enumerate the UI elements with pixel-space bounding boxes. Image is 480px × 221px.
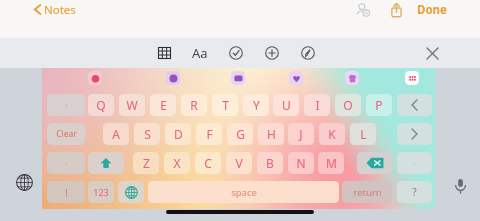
staticText: B (266, 155, 274, 171)
staticText: X (173, 155, 181, 171)
staticText: Z (143, 155, 150, 171)
button[interactable]: C (195, 152, 221, 174)
button[interactable]: B (257, 152, 283, 174)
button[interactable]: U (273, 94, 299, 116)
button[interactable] (118, 181, 144, 203)
staticText: Clear (56, 128, 77, 140)
staticText: return (353, 186, 382, 199)
staticText: ? (412, 185, 417, 199)
staticText: ! (65, 185, 68, 200)
button[interactable]: M (318, 152, 344, 174)
button[interactable]: Y (243, 94, 269, 116)
staticText: F (206, 126, 213, 142)
button[interactable]: Previous (397, 94, 432, 116)
button[interactable]: Notes (34, 2, 76, 17)
button[interactable]: Next (397, 123, 432, 145)
button[interactable]: · (47, 152, 85, 174)
other: Shift (100, 157, 112, 169)
staticText: Done (417, 2, 447, 17)
button[interactable]: Z (133, 152, 159, 174)
button[interactable]: X (164, 152, 190, 174)
button[interactable]: K (319, 123, 345, 145)
staticText: Notes (44, 2, 76, 17)
other: Previous (411, 99, 418, 111)
button[interactable]: · (47, 94, 85, 116)
button[interactable]: G (227, 123, 253, 145)
staticText: J (299, 126, 303, 142)
button[interactable]: A (103, 123, 129, 145)
button[interactable]: Backspace (357, 152, 392, 174)
button[interactable]: Add people (354, 2, 372, 17)
staticText: A (112, 126, 120, 142)
button[interactable]: space (148, 181, 339, 203)
button[interactable]: S (134, 123, 160, 145)
staticText: H (267, 126, 276, 142)
button[interactable]: Attach (260, 41, 284, 65)
staticText: D (174, 126, 183, 142)
staticText: K (328, 126, 336, 142)
staticText: L (360, 126, 367, 142)
button[interactable]: Sticker (166, 71, 180, 85)
button[interactable]: Sticker (88, 71, 102, 85)
other: Backspace (366, 157, 384, 169)
staticText: G (236, 126, 245, 142)
staticText: E (160, 97, 167, 113)
button[interactable]: Text format (188, 41, 212, 65)
button[interactable]: Sticker (405, 71, 419, 85)
button[interactable]: W (119, 94, 145, 116)
staticText: · (413, 157, 416, 169)
staticText: V (235, 155, 243, 171)
button[interactable]: D (165, 123, 191, 145)
button[interactable]: Clear (47, 123, 85, 145)
button[interactable]: Table (152, 41, 176, 65)
staticText: N (296, 155, 306, 171)
button[interactable]: E (150, 94, 176, 116)
staticText: S (144, 126, 151, 142)
button[interactable]: ! (47, 181, 85, 203)
button[interactable]: Shift (88, 152, 124, 174)
other: Next (411, 128, 418, 140)
button[interactable]: H (258, 123, 284, 145)
button[interactable]: I (304, 94, 330, 116)
staticText: R (190, 97, 198, 113)
button[interactable]: Dictation (450, 176, 470, 196)
button[interactable]: L (350, 123, 376, 145)
staticText: · (65, 99, 68, 111)
button[interactable]: N (288, 152, 314, 174)
button[interactable]: P (366, 94, 392, 116)
staticText: space (231, 186, 257, 199)
staticText: Y (253, 97, 260, 113)
button[interactable]: V (226, 152, 252, 174)
button[interactable]: F (196, 123, 222, 145)
staticText: T (222, 97, 229, 113)
button[interactable]: O (335, 94, 361, 116)
button[interactable]: Sticker (345, 71, 359, 85)
button[interactable]: T (212, 94, 238, 116)
button[interactable]: return (342, 181, 392, 203)
button[interactable]: Share (388, 2, 404, 17)
button[interactable]: Checklist (224, 41, 248, 65)
button[interactable]: 123 (88, 181, 114, 203)
staticText: · (65, 157, 68, 169)
staticText: Q (96, 97, 106, 113)
button[interactable]: · (397, 152, 432, 174)
button[interactable]: Sticker (289, 71, 303, 85)
button[interactable]: Hide keyboard (420, 41, 444, 65)
staticText: P (375, 97, 383, 113)
button[interactable]: R (181, 94, 207, 116)
staticText: O (343, 97, 353, 113)
staticText: W (126, 97, 138, 113)
button[interactable]: Sticker (231, 71, 245, 85)
button[interactable]: Switch keyboard (14, 172, 34, 192)
staticText: C (204, 155, 212, 171)
staticText: Aa (192, 44, 208, 62)
button[interactable]: J (288, 123, 314, 145)
staticText: M (326, 155, 337, 171)
staticText: I (315, 97, 320, 113)
button[interactable]: Done (416, 2, 448, 17)
button[interactable]: Q (88, 94, 114, 116)
staticText: U (282, 97, 291, 113)
button[interactable]: Markup (296, 41, 320, 65)
staticText: 123 (93, 186, 109, 198)
button[interactable]: ? (397, 181, 432, 203)
